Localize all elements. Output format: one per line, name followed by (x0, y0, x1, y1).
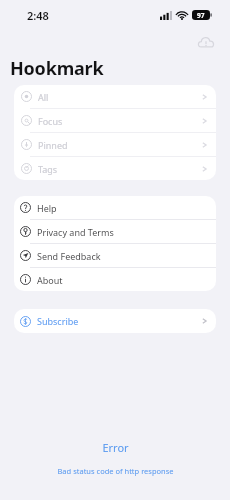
staticText: Error (102, 440, 129, 455)
button[interactable]: Pinned (14, 133, 216, 156)
button[interactable]: Send Feedback (14, 244, 216, 267)
button[interactable]: Subscribe (14, 309, 216, 333)
staticText: All (38, 91, 49, 103)
staticText: 97 (197, 11, 205, 20)
staticText: Focus (38, 115, 63, 127)
button[interactable]: Privacy and Terms (14, 220, 216, 243)
staticText: Privacy and Terms (37, 226, 114, 238)
button[interactable]: Sync error (195, 32, 217, 54)
staticText: Bad status code of http response (57, 466, 174, 476)
button[interactable]: All (14, 85, 216, 108)
staticText: 2:48 (27, 8, 49, 23)
staticText: Subscribe (37, 315, 79, 327)
staticText: Hookmark (10, 56, 104, 78)
button[interactable]: Help (14, 196, 216, 219)
button[interactable]: Tags (14, 157, 216, 180)
staticText: Tags (38, 163, 58, 175)
button[interactable]: Focus (14, 109, 216, 132)
staticText: Pinned (38, 139, 68, 151)
staticText: Send Feedback (37, 250, 101, 262)
button[interactable]: About (14, 268, 216, 291)
staticText: Help (37, 202, 57, 214)
staticText: About (37, 274, 63, 286)
